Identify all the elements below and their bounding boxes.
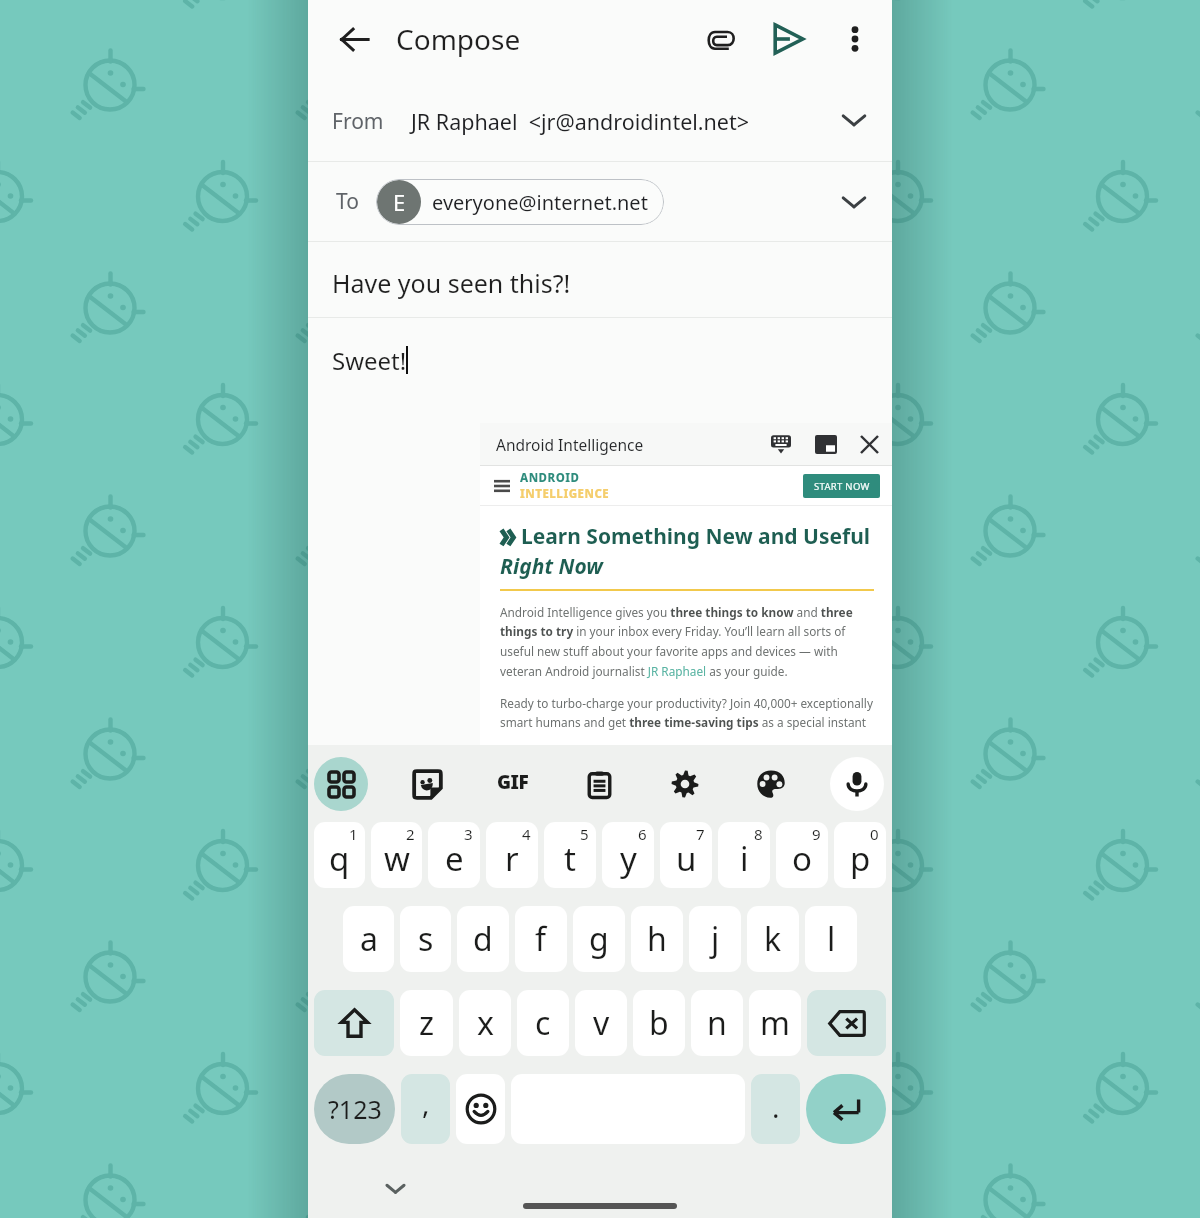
button[interactable]: n <box>691 990 743 1056</box>
staticText: m <box>760 1001 790 1045</box>
staticText: START NOW <box>814 480 870 493</box>
staticText: u <box>676 836 697 881</box>
staticText: o <box>792 836 812 881</box>
button[interactable]: x <box>459 990 511 1056</box>
button[interactable]: u <box>660 822 712 888</box>
button[interactable]: E <box>376 179 664 225</box>
staticText: n <box>707 1001 727 1045</box>
button[interactable]: Close <box>852 427 886 461</box>
button[interactable]: g <box>573 906 625 972</box>
staticText: 4 <box>522 824 531 844</box>
button[interactable]: Send <box>760 11 816 67</box>
button[interactable]: ?123 <box>314 1074 395 1144</box>
button[interactable]: Shift <box>314 990 394 1056</box>
button[interactable]: START NOW <box>803 474 880 498</box>
button[interactable]: Back <box>326 11 382 67</box>
staticText: j <box>711 917 720 961</box>
staticText: 2 <box>406 824 415 844</box>
button[interactable]: t <box>544 822 596 888</box>
button[interactable]: Have you seen this?! <box>308 242 892 317</box>
button[interactable]: l <box>805 906 857 972</box>
button[interactable]: r <box>486 822 538 888</box>
button[interactable]: i <box>718 822 770 888</box>
staticText: v <box>593 1001 610 1045</box>
button[interactable]: Stickers <box>400 757 454 811</box>
button[interactable]: y <box>602 822 654 888</box>
button[interactable]: z <box>400 990 453 1056</box>
staticText: Android Intelligence <box>496 434 644 455</box>
staticText: i <box>740 836 749 881</box>
staticText: c <box>535 1001 551 1045</box>
button[interactable]: a <box>343 906 394 972</box>
button[interactable]: b <box>633 990 685 1056</box>
button[interactable]: Emoji <box>456 1074 505 1144</box>
staticText: k <box>764 917 782 961</box>
staticText: s <box>418 917 434 961</box>
staticText: Have you seen this?! <box>332 266 571 300</box>
staticText: 1 <box>349 824 358 844</box>
button[interactable]: q <box>314 822 365 888</box>
button[interactable]: m <box>749 990 801 1056</box>
button[interactable]: GIF <box>486 757 540 811</box>
staticText: From <box>332 107 384 136</box>
staticText: Learn Something New and Useful <box>521 522 871 551</box>
staticText: h <box>647 917 667 961</box>
button[interactable]: Clipboard <box>572 757 626 811</box>
staticText: Sweet! <box>332 344 407 377</box>
staticText: . <box>772 1088 780 1126</box>
staticText: , <box>422 1084 430 1122</box>
button[interactable]: Hide keyboard <box>376 1169 414 1207</box>
button[interactable]: Expand to <box>832 180 876 224</box>
staticText: p <box>850 836 871 881</box>
staticText: x <box>477 1001 494 1045</box>
staticText: e <box>445 836 464 881</box>
button[interactable]: c <box>517 990 569 1056</box>
button[interactable]: , <box>401 1074 450 1144</box>
button[interactable]: d <box>457 906 509 972</box>
button[interactable]: Voice input <box>830 757 884 811</box>
staticText: Compose <box>396 20 521 58</box>
button[interactable]: o <box>776 822 828 888</box>
staticText: ?123 <box>328 1092 382 1126</box>
button[interactable]: w <box>371 822 422 888</box>
staticText: Android Intelligence gives you three thi… <box>500 604 874 680</box>
button[interactable]: Apps <box>314 757 368 811</box>
staticText: INTELLIGENCE <box>520 486 610 502</box>
button[interactable]: j <box>689 906 741 972</box>
button[interactable]: k <box>747 906 799 972</box>
button[interactable]: Show keyboard <box>764 427 798 461</box>
button[interactable]: h <box>631 906 683 972</box>
staticText: 8 <box>754 824 763 844</box>
button[interactable]: . <box>751 1074 800 1144</box>
staticText: 0 <box>870 824 879 844</box>
staticText: ANDROID <box>520 470 580 486</box>
button[interactable]: More options <box>829 13 881 65</box>
staticText: q <box>329 836 350 881</box>
button[interactable]: Enter <box>806 1074 886 1144</box>
staticText: 7 <box>696 824 705 844</box>
button[interactable]: v <box>575 990 627 1056</box>
staticText: E <box>393 187 406 217</box>
staticText: Ready to turbo-charge your productivity?… <box>500 695 874 731</box>
staticText: y <box>620 836 637 881</box>
staticText: a <box>360 917 378 961</box>
button[interactable]: Backspace <box>807 990 886 1056</box>
button[interactable]: s <box>400 906 451 972</box>
button[interactable]: Attach file <box>693 11 749 67</box>
button[interactable]: Settings <box>658 757 712 811</box>
staticText: w <box>384 836 410 881</box>
staticText: l <box>827 917 836 961</box>
staticText: d <box>473 917 493 961</box>
staticText: 6 <box>638 824 647 844</box>
button[interactable]: f <box>515 906 567 972</box>
button[interactable]: p <box>834 822 886 888</box>
button[interactable]: Expand from <box>832 98 876 142</box>
button[interactable]: Picture in picture <box>809 427 843 461</box>
staticText: 9 <box>812 824 821 844</box>
staticText: 5 <box>580 824 589 844</box>
staticText: f <box>535 917 547 961</box>
staticText: t <box>564 836 576 881</box>
button[interactable]: Theme <box>744 757 798 811</box>
button[interactable]: e <box>428 822 480 888</box>
